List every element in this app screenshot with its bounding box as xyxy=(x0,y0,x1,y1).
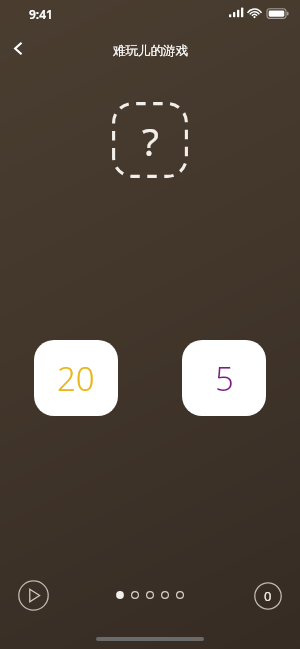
staticText: 难玩儿的游戏 xyxy=(113,43,188,59)
button[interactable]: Back xyxy=(1,31,35,65)
button[interactable]: 5 xyxy=(182,340,266,416)
staticText: ? xyxy=(142,114,159,167)
staticText: 5 xyxy=(215,356,234,401)
button[interactable]: 20 xyxy=(34,340,118,416)
button[interactable]: Unknown answer slot xyxy=(112,102,188,178)
staticText: 9:41 xyxy=(29,6,53,22)
staticText: 0 xyxy=(264,587,272,605)
staticText: 20 xyxy=(57,356,95,401)
button[interactable]: Play xyxy=(18,580,49,611)
button[interactable]: 0 xyxy=(254,582,282,610)
